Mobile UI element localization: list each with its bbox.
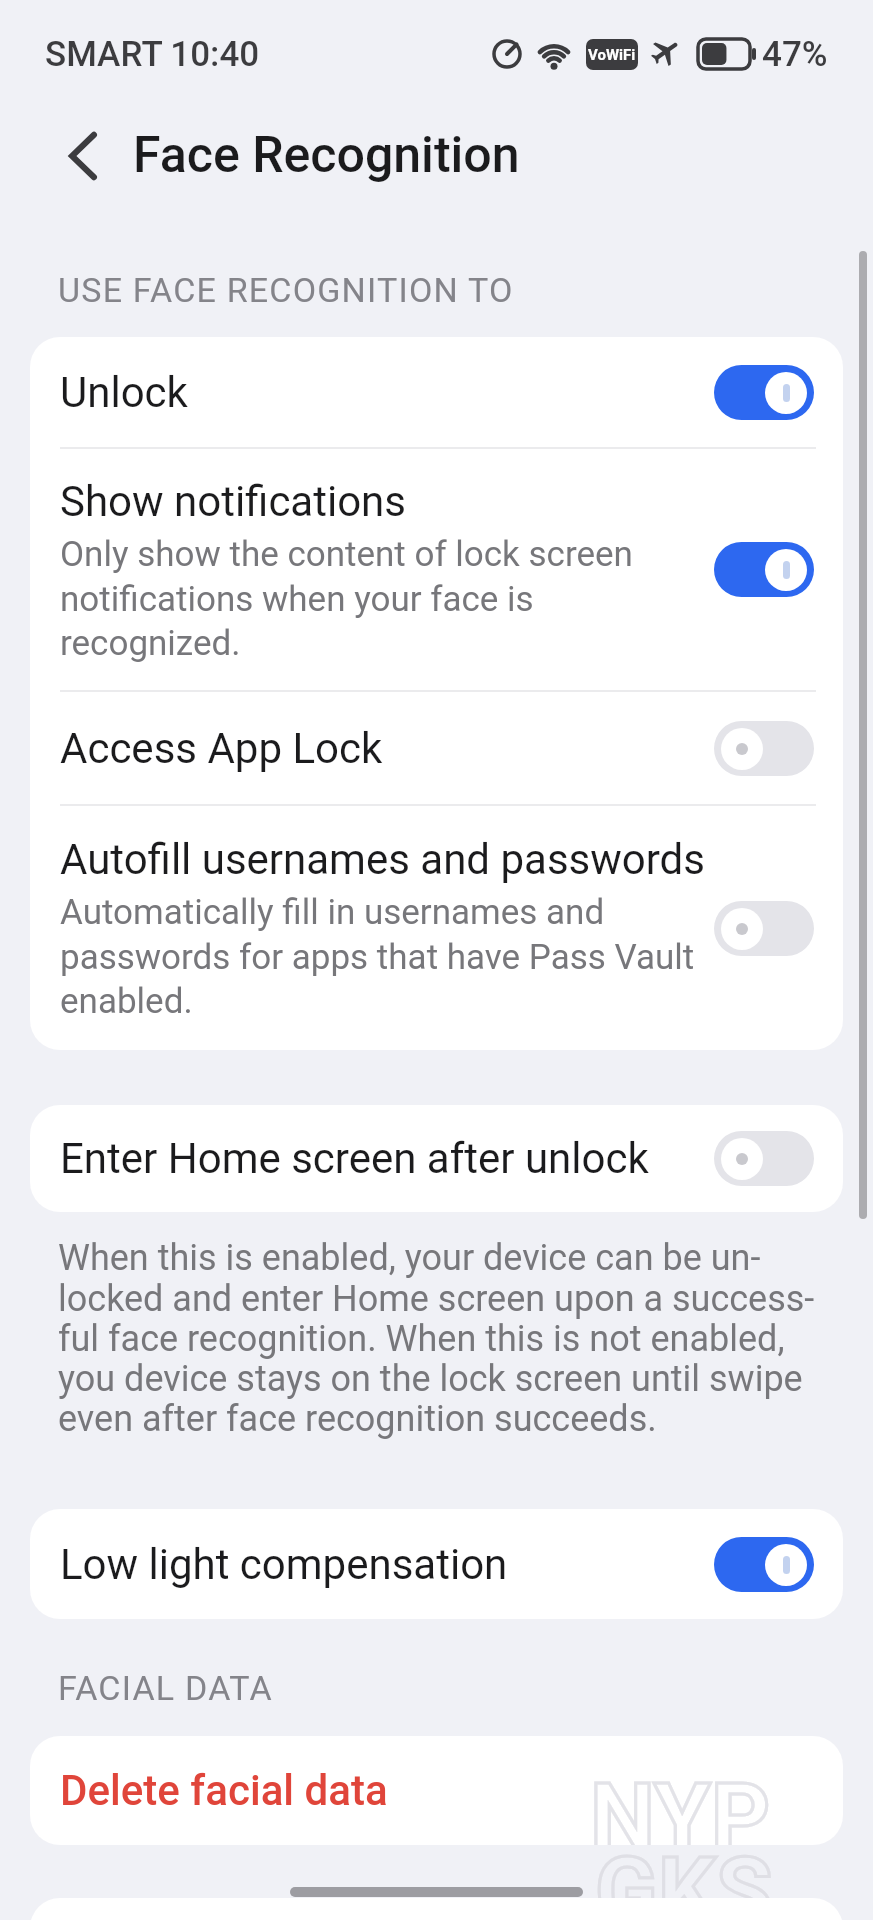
- staticText: Face Recognition: [133, 126, 520, 185]
- staticText: Automatically fill in usernames and pass…: [60, 892, 695, 1021]
- staticText: Enter Home screen after unlock: [60, 1134, 649, 1183]
- button[interactable]: [714, 901, 814, 956]
- button[interactable]: [714, 1131, 814, 1186]
- staticText: Only show the content of lock screen not…: [60, 534, 633, 663]
- button[interactable]: Access App Lock: [30, 692, 843, 804]
- button[interactable]: [714, 721, 814, 776]
- staticText: Access App Lock: [60, 724, 383, 773]
- staticText: Unlock: [60, 368, 188, 417]
- button[interactable]: Enter Home screen after unlock: [30, 1105, 843, 1212]
- button[interactable]: [714, 542, 814, 597]
- staticText: 47%: [762, 34, 828, 75]
- staticText: Delete facial data: [60, 1766, 388, 1815]
- staticText: GKS: [595, 1838, 773, 1920]
- staticText: Show notifications: [60, 477, 406, 526]
- button[interactable]: [714, 365, 814, 420]
- staticText: VoWiFi: [588, 46, 636, 64]
- button[interactable]: [58, 128, 108, 184]
- staticText: When this is enabled, your device can be…: [58, 1237, 815, 1439]
- button[interactable]: Unlock: [30, 337, 843, 447]
- button[interactable]: Autofill usernames and passwords: [30, 806, 843, 1050]
- button[interactable]: Low light compensation: [30, 1509, 843, 1619]
- staticText: NYP: [590, 1764, 771, 1845]
- button[interactable]: NYP: [30, 1736, 843, 1845]
- button[interactable]: Show notifications: [30, 449, 843, 690]
- staticText: FACIAL DATA: [58, 1668, 273, 1708]
- staticText: USE FACE RECOGNITION TO: [58, 270, 514, 310]
- staticText: Low light compensation: [60, 1540, 508, 1589]
- staticText: Autofill usernames and passwords: [60, 835, 705, 884]
- button[interactable]: [714, 1537, 814, 1592]
- staticText: SMART 10:40: [45, 34, 260, 75]
